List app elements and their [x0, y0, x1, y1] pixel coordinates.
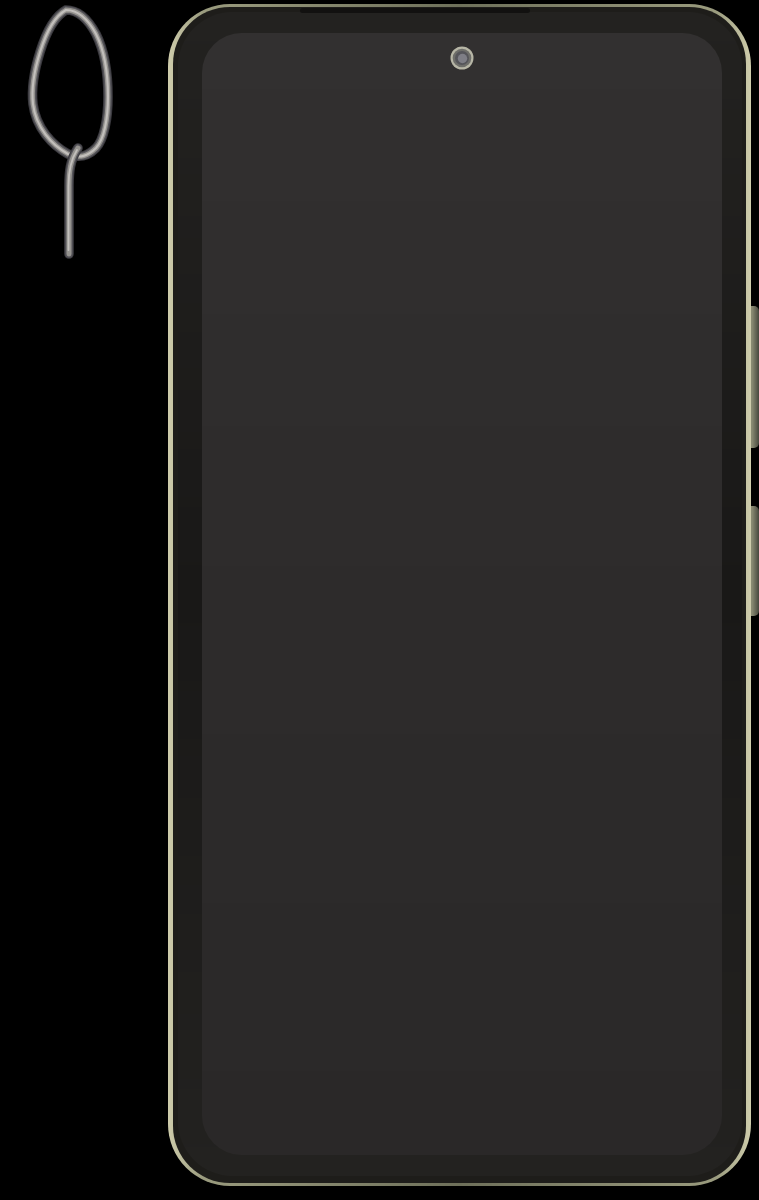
button[interactable]: Smartphone with SIM ejector tool — [0, 0, 759, 1200]
